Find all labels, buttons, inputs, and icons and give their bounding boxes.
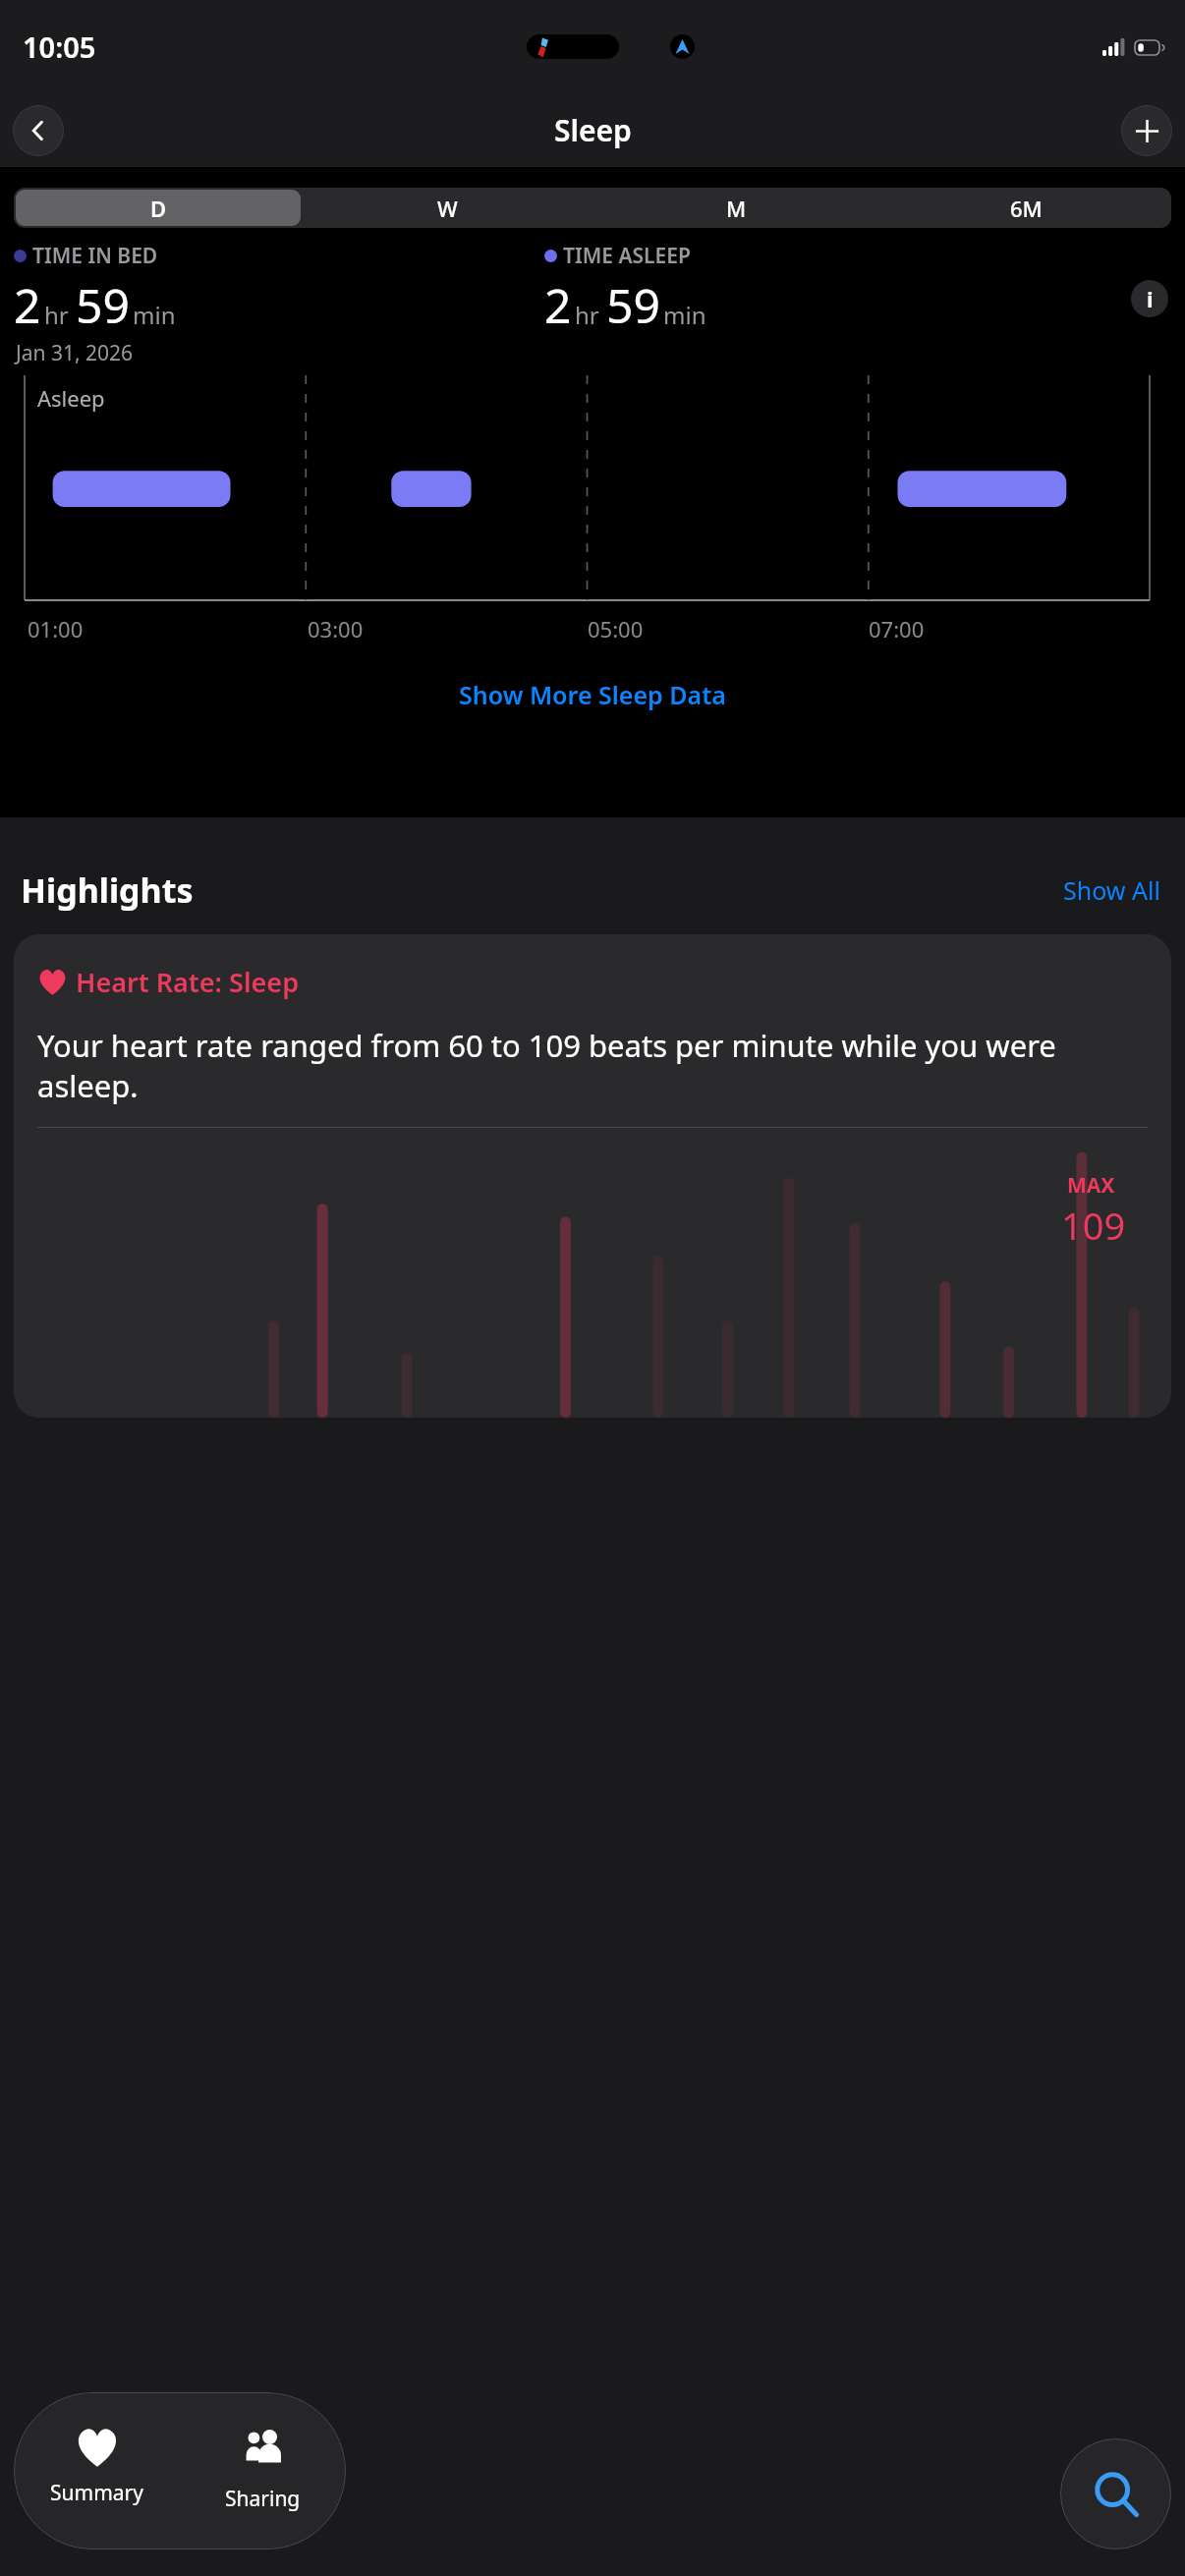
staticText: Summary — [50, 2479, 143, 2507]
staticText: 03:00 — [308, 614, 364, 644]
staticText: 6M — [1010, 194, 1043, 223]
staticText: hr — [44, 299, 69, 331]
button[interactable]: Information — [1131, 280, 1168, 317]
staticText: 109 — [1061, 1200, 1126, 1251]
staticText: 01:00 — [28, 614, 84, 644]
staticText: 59 — [606, 273, 660, 337]
staticText: min — [663, 299, 706, 331]
button[interactable]: 6M — [883, 190, 1169, 226]
staticText: MAX — [1067, 1171, 1115, 1200]
button[interactable]: Sharing — [180, 2392, 346, 2549]
staticText: Your heart rate ranged from 60 to 109 be… — [37, 1025, 1148, 1106]
staticText: Sharing — [225, 2485, 301, 2513]
staticText: min — [133, 299, 176, 331]
button[interactable]: Show More Sleep Data — [0, 672, 1185, 717]
staticText: TIME ASLEEP — [563, 242, 691, 270]
button[interactable]: Back — [13, 105, 64, 156]
button[interactable]: Search — [1060, 2438, 1171, 2549]
staticText: TIME IN BED — [32, 242, 158, 270]
staticText: Show All — [1063, 873, 1160, 907]
staticText: 2 — [14, 273, 41, 337]
button[interactable]: D — [16, 190, 301, 226]
staticText: 10:05 — [23, 28, 96, 66]
staticText: 59 — [76, 273, 130, 337]
staticText: 2 — [544, 273, 572, 337]
staticText: hr — [575, 299, 599, 331]
staticText: i — [1147, 284, 1154, 313]
staticText: Show More Sleep Data — [459, 678, 726, 711]
staticText: M — [726, 194, 747, 223]
staticText: Heart Rate: Sleep — [76, 964, 300, 1000]
button[interactable]: M — [593, 190, 879, 226]
button[interactable]: Heart Rate: Sleep — [14, 934, 1171, 1418]
button[interactable]: W — [305, 190, 590, 226]
staticText: 07:00 — [869, 614, 925, 644]
button[interactable]: Add data — [1121, 105, 1172, 156]
staticText: W — [437, 194, 458, 223]
button[interactable]: Show All — [1059, 869, 1164, 911]
staticText: Sleep — [554, 110, 632, 150]
staticText: 05:00 — [588, 614, 644, 644]
staticText: Asleep — [37, 383, 105, 413]
staticText: D — [150, 194, 167, 223]
staticText: Jan 31, 2026 — [16, 339, 134, 367]
staticText: Highlights — [21, 868, 194, 913]
button[interactable]: Summary — [14, 2392, 180, 2549]
